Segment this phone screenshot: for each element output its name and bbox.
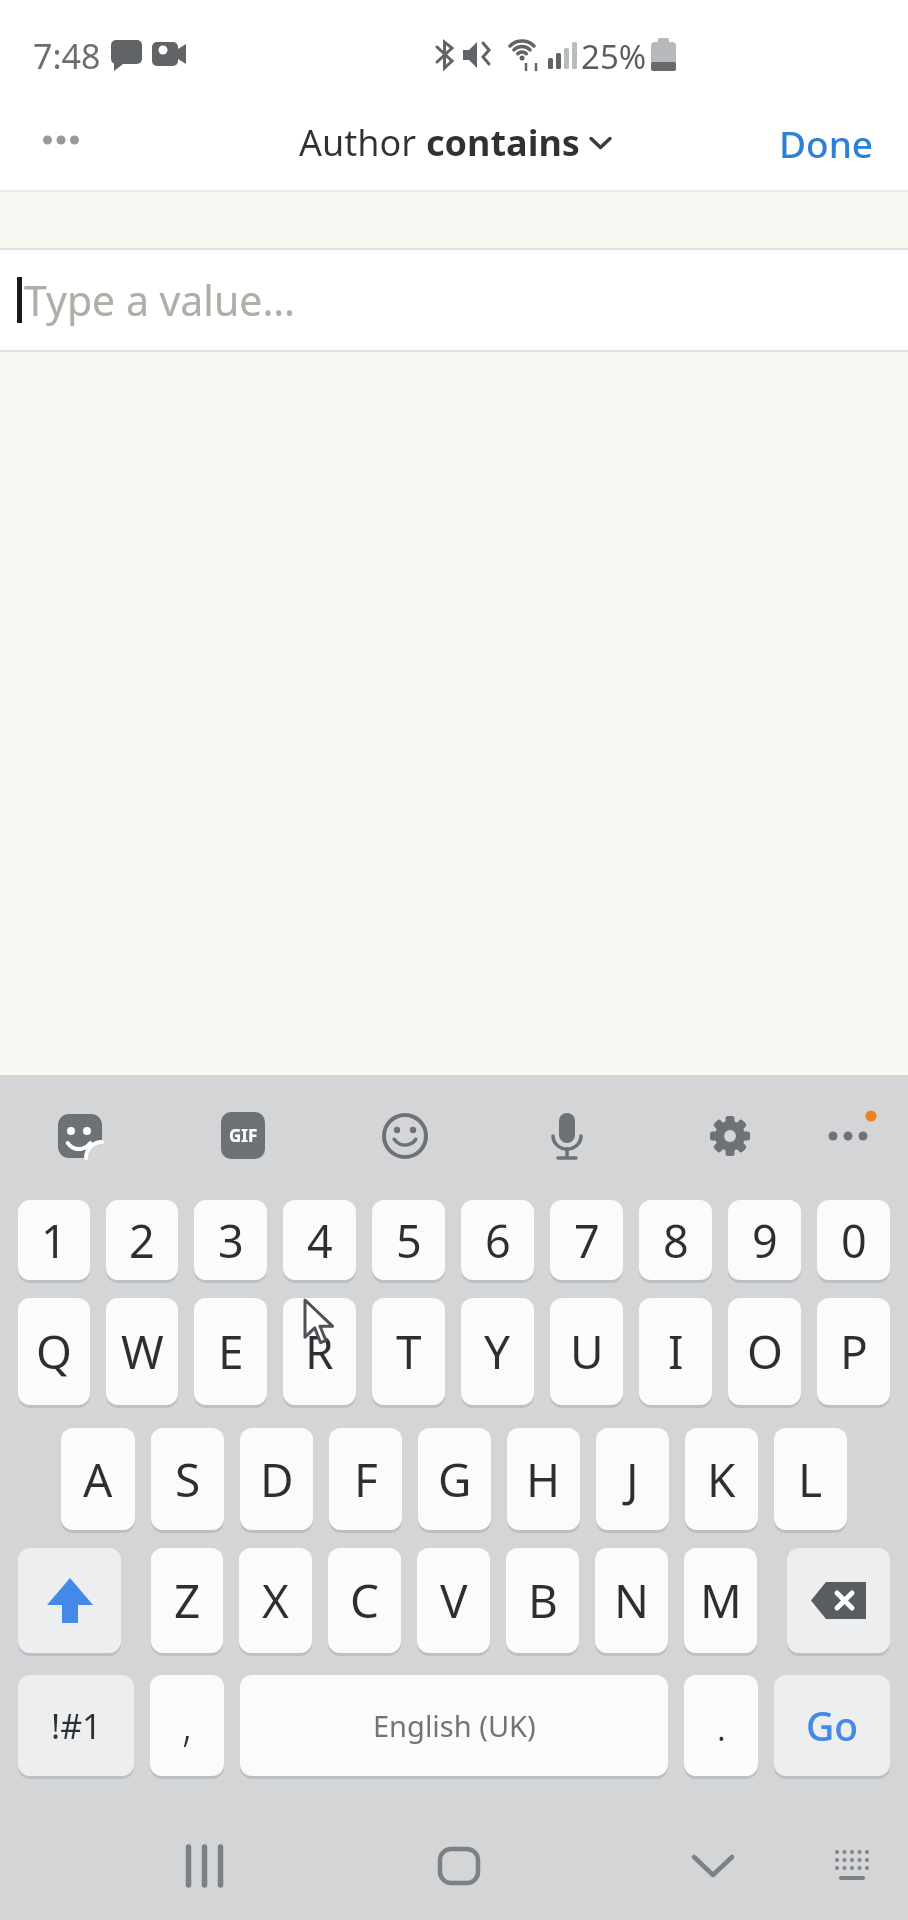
- staticText: 5: [396, 1210, 422, 1271]
- button[interactable]: 4: [283, 1200, 356, 1280]
- staticText: 3: [218, 1210, 244, 1271]
- staticText: R: [305, 1320, 334, 1383]
- staticText: W: [121, 1320, 164, 1383]
- button[interactable]: M: [684, 1548, 757, 1653]
- staticText: H: [526, 1448, 561, 1511]
- staticText: contains: [426, 118, 580, 167]
- button[interactable]: 7: [550, 1200, 623, 1280]
- button[interactable]: J: [596, 1428, 669, 1530]
- staticText: Z: [174, 1569, 201, 1632]
- staticText: Y: [484, 1320, 511, 1383]
- button[interactable]: S: [151, 1428, 224, 1530]
- button[interactable]: [815, 1831, 885, 1901]
- button[interactable]: R: [283, 1298, 356, 1405]
- button[interactable]: [383, 1112, 429, 1158]
- staticText: 7: [574, 1210, 600, 1271]
- button[interactable]: Z: [151, 1548, 223, 1653]
- button[interactable]: T: [372, 1298, 445, 1405]
- button[interactable]: GIF: [221, 1112, 265, 1159]
- staticText: T: [396, 1320, 422, 1383]
- staticText: 0: [841, 1210, 867, 1271]
- button[interactable]: V: [417, 1548, 490, 1653]
- button[interactable]: Y: [461, 1298, 534, 1405]
- button[interactable]: ,: [150, 1675, 224, 1776]
- button[interactable]: A: [61, 1428, 135, 1530]
- staticText: .: [716, 1694, 727, 1754]
- button[interactable]: 0: [817, 1200, 890, 1280]
- button[interactable]: [170, 1831, 240, 1901]
- staticText: S: [175, 1448, 201, 1511]
- button[interactable]: N: [595, 1548, 668, 1653]
- button[interactable]: K: [685, 1428, 758, 1530]
- staticText: Done: [779, 118, 874, 168]
- staticText: GIF: [229, 1124, 258, 1147]
- staticText: G: [438, 1448, 472, 1511]
- staticText: L: [798, 1448, 823, 1511]
- staticText: A: [83, 1448, 113, 1511]
- staticText: 7:48: [33, 33, 101, 79]
- button[interactable]: Go: [774, 1675, 890, 1776]
- button[interactable]: 1: [18, 1200, 90, 1280]
- staticText: V: [440, 1569, 468, 1632]
- staticText: O: [747, 1320, 783, 1383]
- button[interactable]: Q: [18, 1298, 90, 1405]
- staticText: C: [350, 1569, 380, 1632]
- staticText: 25%: [581, 34, 647, 79]
- button[interactable]: D: [240, 1428, 313, 1530]
- button[interactable]: 5: [372, 1200, 445, 1280]
- button[interactable]: Author: [299, 118, 610, 167]
- staticText: Q: [36, 1320, 72, 1383]
- button[interactable]: H: [507, 1428, 580, 1530]
- button[interactable]: F: [329, 1428, 402, 1530]
- button[interactable]: L: [774, 1428, 847, 1530]
- button[interactable]: 9: [728, 1200, 801, 1280]
- staticText: 4: [307, 1210, 333, 1271]
- staticText: D: [260, 1448, 294, 1511]
- button[interactable]: E: [194, 1298, 267, 1405]
- button[interactable]: B: [506, 1548, 579, 1653]
- button[interactable]: [420, 1831, 490, 1901]
- staticText: Go: [806, 1699, 859, 1752]
- button[interactable]: P: [817, 1298, 890, 1405]
- staticText: E: [218, 1320, 244, 1383]
- button[interactable]: [675, 1831, 745, 1901]
- staticText: N: [614, 1569, 649, 1632]
- staticText: 6: [485, 1210, 511, 1271]
- button[interactable]: 6: [461, 1200, 534, 1280]
- staticText: U: [570, 1320, 604, 1383]
- button[interactable]: U: [550, 1298, 623, 1405]
- button[interactable]: [58, 1112, 104, 1158]
- button[interactable]: .: [684, 1675, 758, 1776]
- staticText: 9: [752, 1210, 778, 1271]
- staticText: X: [262, 1569, 289, 1632]
- button[interactable]: Done: [765, 110, 888, 176]
- button[interactable]: [30, 123, 90, 159]
- staticText: M: [700, 1569, 742, 1632]
- button[interactable]: W: [106, 1298, 178, 1405]
- button[interactable]: I: [639, 1298, 712, 1405]
- button[interactable]: [787, 1548, 890, 1653]
- staticText: Author: [299, 118, 426, 167]
- button[interactable]: Type a value…: [0, 250, 908, 350]
- button[interactable]: [820, 1112, 866, 1158]
- staticText: 8: [663, 1210, 689, 1271]
- button[interactable]: X: [239, 1548, 312, 1653]
- staticText: !#1: [51, 1703, 102, 1749]
- button[interactable]: [708, 1112, 754, 1158]
- staticText: K: [707, 1448, 736, 1511]
- button[interactable]: 2: [106, 1200, 178, 1280]
- button[interactable]: C: [328, 1548, 401, 1653]
- button[interactable]: !#1: [18, 1675, 134, 1776]
- button[interactable]: English (UK): [240, 1675, 668, 1776]
- button[interactable]: 3: [194, 1200, 267, 1280]
- staticText: B: [528, 1569, 558, 1632]
- button[interactable]: 8: [639, 1200, 712, 1280]
- button[interactable]: [18, 1548, 121, 1653]
- button[interactable]: [545, 1112, 591, 1158]
- staticText: 1: [41, 1210, 67, 1271]
- staticText: Type a value…: [24, 272, 295, 328]
- button[interactable]: G: [418, 1428, 491, 1530]
- staticText: J: [626, 1448, 639, 1511]
- button[interactable]: O: [728, 1298, 801, 1405]
- staticText: ,: [182, 1694, 192, 1754]
